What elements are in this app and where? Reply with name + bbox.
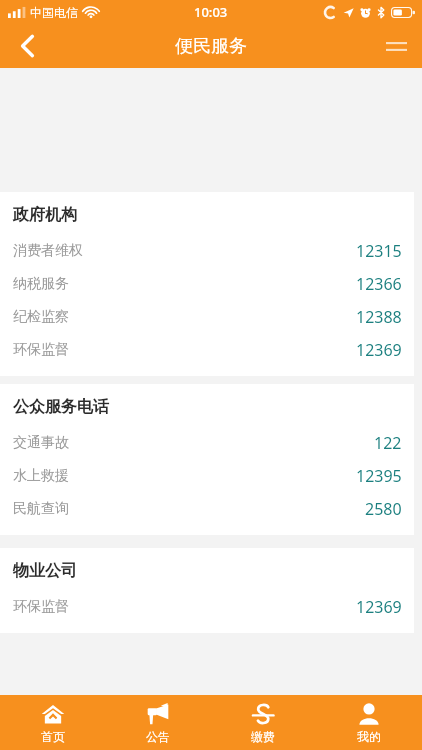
staticText: 水上救援: [13, 467, 69, 485]
button[interactable]: 水上救援: [0, 459, 414, 492]
button[interactable]: 纪检监察: [0, 300, 414, 333]
button[interactable]: Menu: [370, 24, 422, 68]
staticText: 消费者维权: [13, 242, 83, 260]
button[interactable]: 环保监督: [0, 590, 414, 623]
staticText: 12366: [356, 273, 402, 295]
staticText: 交通事故: [13, 434, 69, 452]
staticText: 我的: [357, 729, 381, 744]
staticText: 政府机构: [13, 205, 77, 225]
staticText: 中国电信: [30, 5, 78, 20]
button[interactable]: 消费者维权: [0, 234, 414, 267]
staticText: 便民服务: [175, 35, 247, 58]
staticText: 纪检监察: [13, 308, 69, 326]
staticText: 环保监督: [13, 341, 69, 359]
button[interactable]: 纳税服务: [0, 267, 414, 300]
staticText: 2580: [365, 498, 402, 520]
staticText: 公告: [146, 729, 170, 744]
button[interactable]: 环保监督: [0, 333, 414, 366]
staticText: 缴费: [251, 729, 275, 744]
staticText: 12315: [356, 240, 402, 262]
button[interactable]: 缴费: [210, 695, 316, 750]
button[interactable]: 民航查询: [0, 492, 414, 525]
staticText: 122: [374, 432, 402, 454]
staticText: 首页: [41, 729, 65, 744]
button[interactable]: 交通事故: [0, 426, 414, 459]
button[interactable]: 公告: [105, 695, 210, 750]
staticText: 民航查询: [13, 500, 69, 518]
staticText: 纳税服务: [13, 275, 69, 293]
staticText: 12369: [356, 339, 402, 361]
staticText: 12388: [356, 306, 402, 328]
staticText: 12369: [356, 596, 402, 618]
staticText: 10:03: [194, 3, 228, 21]
staticText: 环保监督: [13, 598, 69, 616]
staticText: 物业公司: [13, 561, 77, 581]
button[interactable]: 我的: [316, 695, 422, 750]
staticText: 公众服务电话: [13, 397, 109, 417]
staticText: 12395: [356, 465, 402, 487]
button[interactable]: 首页: [0, 695, 105, 750]
button[interactable]: Back: [0, 24, 54, 68]
